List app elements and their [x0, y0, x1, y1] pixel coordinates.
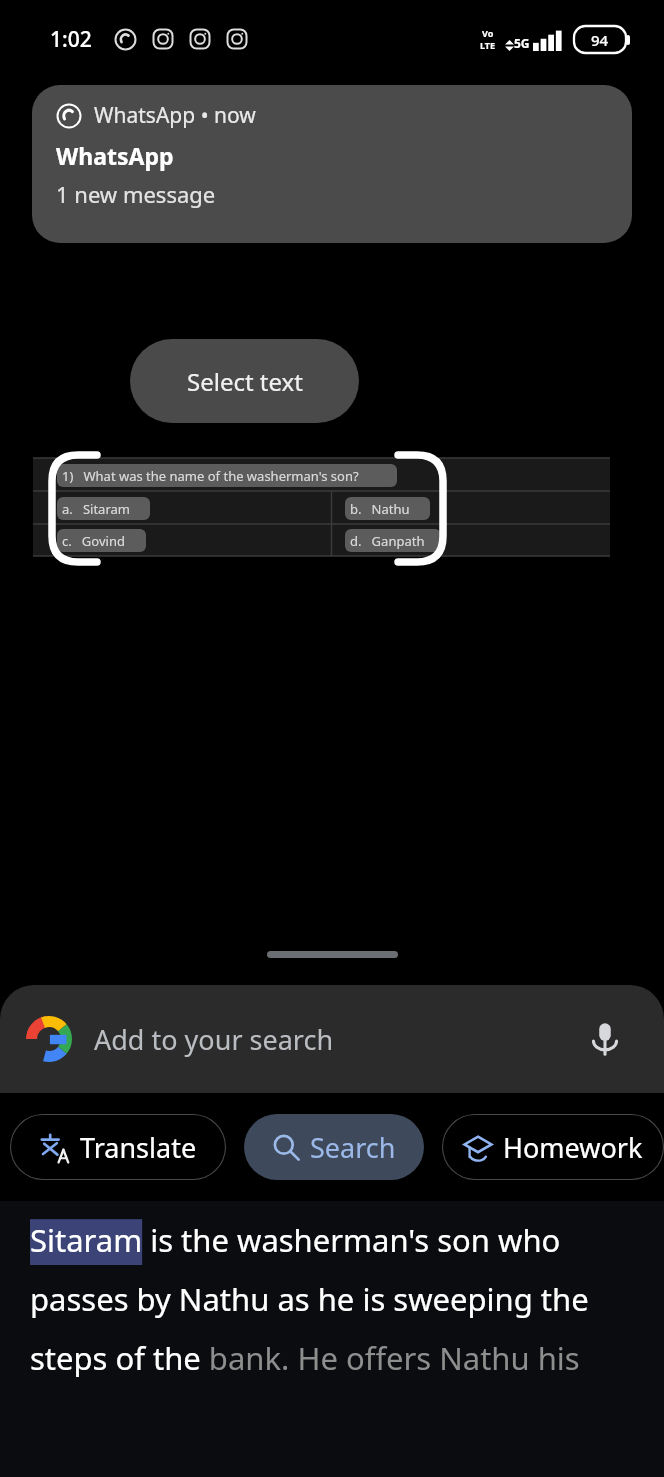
staticText: Select text	[187, 365, 303, 398]
staticText: c. Govind	[62, 532, 125, 550]
button[interactable]: Translate	[10, 1114, 226, 1180]
button[interactable]: Add to your search	[0, 985, 664, 1093]
staticText: Sitaram is the washerman's son who passe…	[30, 1219, 664, 1379]
staticText: LTE	[480, 39, 496, 51]
staticText: Vo	[482, 27, 494, 39]
button[interactable]: b. Nathu	[345, 497, 430, 520]
staticText: 1:02	[50, 25, 92, 54]
button[interactable]: Search	[244, 1114, 424, 1180]
staticText: a. Sitaram	[62, 500, 130, 518]
button[interactable]: c. Govind	[57, 529, 146, 552]
button[interactable]: 1) What was the name of the washerman's …	[57, 464, 397, 487]
staticText: 1 new message	[56, 179, 216, 209]
button[interactable]: Select text	[130, 339, 359, 423]
staticText: WhatsApp • now	[94, 101, 256, 130]
staticText: 1) What was the name of the washerman's …	[62, 467, 359, 485]
staticText: WhatsApp	[56, 140, 174, 171]
button[interactable]: d. Ganpath	[345, 529, 441, 552]
staticText: d. Ganpath	[350, 532, 425, 550]
staticText: Homework	[503, 1129, 643, 1166]
staticText: Add to your search	[94, 1021, 334, 1058]
staticText: 94	[591, 30, 609, 50]
button[interactable]: Homework	[442, 1114, 664, 1180]
button[interactable]: a. Sitaram	[57, 497, 150, 520]
staticText: b. Nathu	[350, 500, 410, 518]
button[interactable]: WhatsApp • now	[32, 85, 632, 243]
staticText: Translate	[80, 1129, 197, 1166]
staticText: Search	[310, 1129, 396, 1166]
staticText: 5G	[514, 35, 530, 51]
button[interactable]: Voice search	[576, 1010, 634, 1068]
